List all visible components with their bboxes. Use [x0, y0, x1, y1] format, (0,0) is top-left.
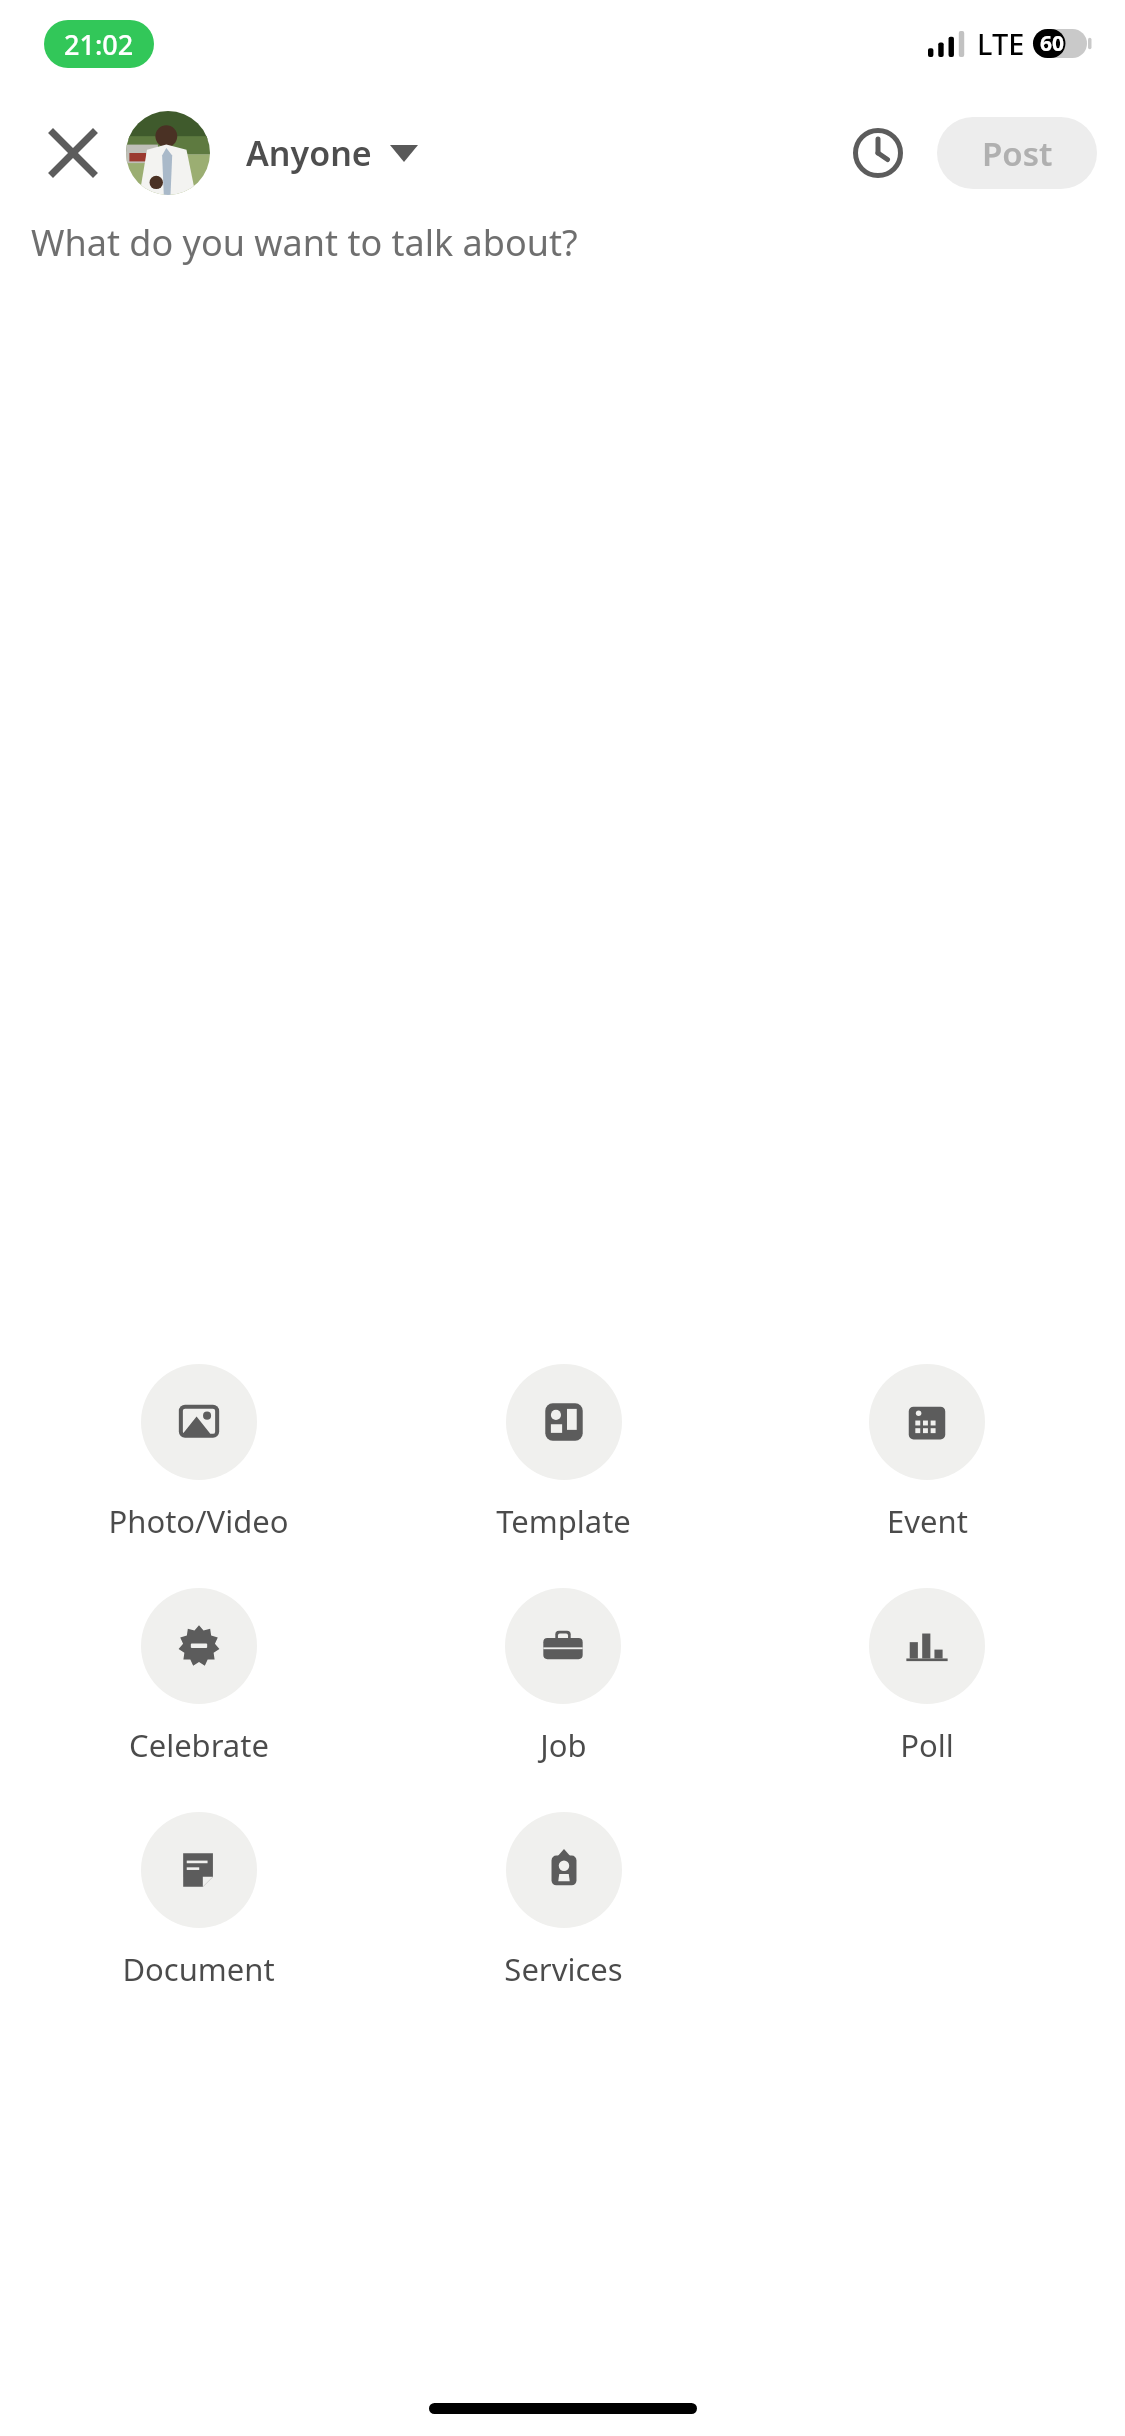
staticText: Services: [504, 1948, 623, 1990]
button[interactable]: Template: [496, 1360, 631, 1546]
staticText: Document: [122, 1948, 275, 1990]
button[interactable]: Celebrate: [129, 1584, 269, 1770]
staticText: Event: [887, 1500, 968, 1542]
button[interactable]: Document: [122, 1808, 275, 1994]
staticText: Celebrate: [129, 1724, 269, 1766]
staticText: Photo/Video: [108, 1500, 289, 1542]
button[interactable]: Poll: [869, 1584, 985, 1770]
staticText: 21:02: [64, 26, 134, 63]
button[interactable]: Services: [504, 1808, 623, 1994]
staticText: Poll: [900, 1724, 954, 1766]
staticText: LTE: [977, 24, 1025, 63]
staticText: What do you want to talk about?: [31, 218, 578, 267]
button[interactable]: Schedule post: [835, 110, 921, 196]
staticText: Job: [540, 1724, 587, 1766]
staticText: Post: [982, 131, 1053, 176]
button[interactable]: Photo/Video: [108, 1360, 289, 1546]
button[interactable]: Close: [30, 110, 116, 196]
staticText: Anyone: [246, 130, 372, 176]
button[interactable]: Anyone: [126, 111, 418, 195]
staticText: Template: [496, 1500, 631, 1542]
button[interactable]: Post: [937, 117, 1097, 189]
staticText: 60: [1040, 29, 1065, 58]
button[interactable]: Event: [869, 1360, 985, 1546]
button[interactable]: Job: [505, 1584, 621, 1770]
